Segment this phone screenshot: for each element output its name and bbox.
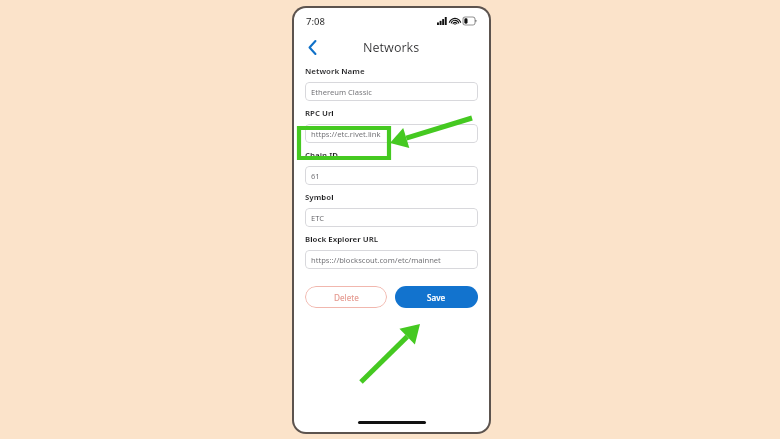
button[interactable]: ETC: [305, 208, 478, 227]
button[interactable]: Ethereum Classic: [305, 82, 478, 101]
staticText: Network Name: [305, 66, 365, 77]
staticText: Save: [427, 292, 446, 303]
button[interactable]: 61: [305, 166, 478, 185]
button[interactable]: https:://blockscout.com/etc/mainnet: [305, 250, 478, 269]
staticText: Networks: [363, 39, 420, 56]
staticText: Chain ID: [305, 150, 338, 161]
button[interactable]: Delete: [305, 286, 387, 308]
button[interactable]: https://etc.rivet.link: [305, 124, 478, 143]
staticText: 7:08: [306, 15, 325, 28]
staticText: Symbol: [305, 192, 334, 203]
button[interactable]: Save: [395, 286, 478, 308]
staticText: https://etc.rivet.link: [311, 129, 381, 139]
staticText: ETC: [311, 213, 325, 223]
staticText: 61: [311, 171, 320, 181]
button[interactable]: Back: [299, 34, 325, 60]
staticText: Ethereum Classic: [311, 87, 372, 97]
staticText: Block Explorer URL: [305, 234, 379, 245]
staticText: https:://blockscout.com/etc/mainnet: [311, 255, 441, 265]
staticText: RPC Url: [305, 108, 334, 119]
staticText: Delete: [334, 292, 359, 303]
